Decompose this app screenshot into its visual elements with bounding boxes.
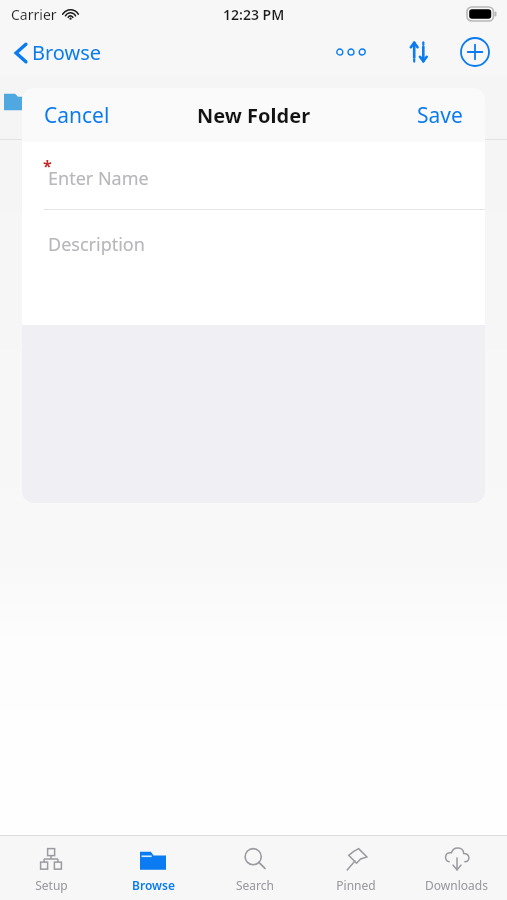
- staticText: Search: [236, 877, 274, 893]
- staticText: Carrier: [11, 5, 57, 24]
- button[interactable]: Sort: [399, 32, 439, 72]
- button[interactable]: Downloads: [406, 836, 507, 900]
- button[interactable]: Pinned: [305, 836, 406, 900]
- button[interactable]: More options: [329, 30, 373, 74]
- button[interactable]: Setup: [0, 836, 102, 900]
- button[interactable]: Browse: [10, 33, 106, 72]
- staticText: Browse: [132, 877, 175, 893]
- staticText: New Folder: [197, 102, 311, 129]
- staticText: Cancel: [44, 101, 110, 130]
- staticText: Setup: [35, 877, 68, 893]
- staticText: *: [43, 155, 52, 177]
- staticText: Description: [48, 232, 145, 257]
- button[interactable]: Cancel: [22, 91, 132, 140]
- staticText: Browse: [32, 39, 102, 66]
- staticText: 12:23 PM: [223, 5, 285, 24]
- staticText: Downloads: [425, 877, 488, 893]
- staticText: Enter Name: [48, 166, 149, 191]
- staticText: Pinned: [336, 877, 376, 893]
- button[interactable]: Search: [204, 836, 305, 900]
- staticText: Save: [417, 101, 463, 130]
- button[interactable]: Add: [453, 30, 497, 74]
- button[interactable]: Save: [395, 91, 485, 140]
- button[interactable]: Browse: [102, 836, 204, 900]
